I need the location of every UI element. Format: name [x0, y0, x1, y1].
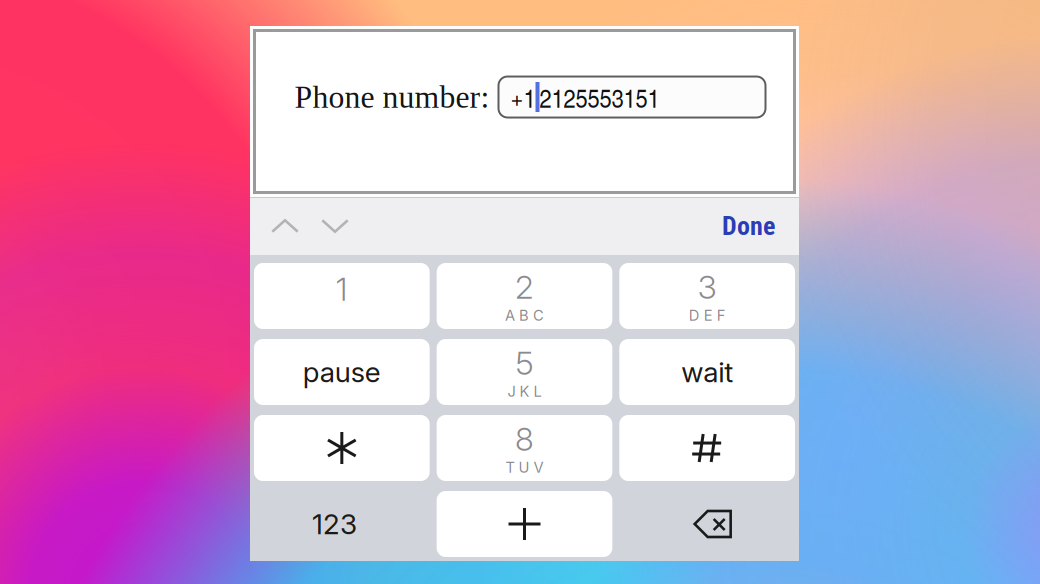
- staticText: 8: [515, 420, 534, 458]
- button[interactable]: Done: [710, 197, 787, 255]
- staticText: 123: [312, 507, 357, 541]
- staticText: J K L: [507, 382, 541, 400]
- staticText: +1: [510, 79, 535, 115]
- button[interactable]: 2: [437, 263, 612, 329]
- button[interactable]: Plus: [437, 491, 612, 557]
- button[interactable]: 5: [437, 339, 612, 405]
- staticText: D E F: [689, 306, 726, 324]
- staticText: 1: [336, 270, 348, 308]
- staticText: Phone number:: [294, 79, 489, 114]
- button[interactable]: 123: [254, 491, 430, 557]
- staticText: 2: [515, 268, 534, 306]
- button[interactable]: Delete: [619, 491, 795, 557]
- staticText: wait: [681, 355, 733, 389]
- button[interactable]: pause: [254, 339, 430, 405]
- staticText: 2125553151: [539, 79, 659, 115]
- staticText: 5: [515, 344, 533, 382]
- staticText: Done: [722, 211, 775, 241]
- staticText: T U V: [505, 458, 543, 476]
- button[interactable]: Previous field: [260, 197, 310, 255]
- staticText: A B C: [505, 306, 544, 324]
- staticText: 3: [698, 268, 717, 306]
- button[interactable]: wait: [619, 339, 795, 405]
- button[interactable]: Pound: [619, 415, 795, 481]
- button[interactable]: 8: [437, 415, 612, 481]
- button[interactable]: Star: [254, 415, 430, 481]
- button[interactable]: Next field: [310, 197, 360, 255]
- staticText: pause: [303, 355, 381, 389]
- button[interactable]: 3: [619, 263, 795, 329]
- button[interactable]: 1: [254, 263, 430, 329]
